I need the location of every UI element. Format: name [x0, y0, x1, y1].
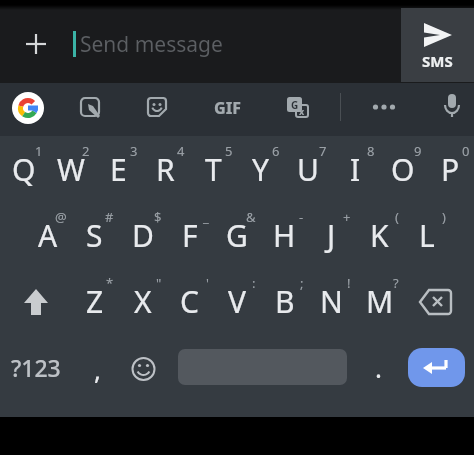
staticText: *: [106, 274, 114, 292]
button[interactable]: U: [284, 136, 331, 202]
button[interactable]: C: [166, 268, 213, 334]
button[interactable]: [12, 92, 44, 124]
staticText: D: [132, 215, 154, 256]
staticText: S: [86, 215, 103, 256]
button[interactable]: L: [403, 202, 450, 268]
staticText: -: [299, 208, 304, 226]
staticText: .: [375, 350, 382, 385]
staticText: ': [206, 274, 209, 292]
button[interactable]: Y: [237, 136, 284, 202]
staticText: Q: [12, 149, 36, 190]
button[interactable]: S: [71, 202, 118, 268]
staticText: x: [299, 105, 305, 117]
button[interactable]: E: [95, 136, 142, 202]
staticText: GIF: [214, 97, 242, 119]
staticText: 9: [414, 142, 422, 160]
button[interactable]: GIF: [206, 92, 250, 124]
staticText: ;: [300, 274, 304, 292]
staticText: +: [343, 208, 351, 226]
staticText: U: [297, 149, 319, 190]
staticText: H: [273, 215, 296, 256]
button[interactable]: G: [284, 94, 312, 122]
staticText: 8: [367, 142, 375, 160]
staticText: L: [419, 215, 435, 256]
button[interactable]: B: [261, 268, 308, 334]
staticText: E: [110, 149, 127, 190]
button[interactable]: N: [308, 268, 355, 334]
staticText: 4: [177, 142, 185, 160]
staticText: G: [291, 98, 299, 112]
button[interactable]: .: [355, 334, 402, 400]
button[interactable]: Q: [0, 136, 47, 202]
staticText: 7: [319, 142, 327, 160]
staticText: @: [55, 208, 67, 226]
staticText: 3: [130, 142, 138, 160]
staticText: &: [246, 208, 256, 226]
button[interactable]: G: [213, 202, 260, 268]
staticText: (: [395, 208, 399, 226]
staticText: Send message: [80, 30, 223, 59]
button[interactable]: M: [356, 268, 403, 334]
button[interactable]: A: [24, 202, 71, 268]
staticText: ?123: [11, 352, 61, 383]
staticText: I: [350, 149, 361, 190]
button[interactable]: ,: [71, 334, 123, 400]
staticText: !: [347, 274, 351, 292]
button[interactable]: F: [166, 202, 213, 268]
staticText: P: [441, 149, 460, 190]
button[interactable]: SMS: [401, 8, 474, 82]
staticText: A: [38, 215, 58, 256]
staticText: ?: [393, 274, 399, 292]
staticText: 0: [462, 142, 470, 160]
staticText: G: [226, 215, 248, 256]
staticText: W: [57, 149, 85, 190]
button[interactable]: [368, 94, 400, 122]
staticText: F: [182, 215, 198, 256]
button[interactable]: [123, 334, 165, 400]
button[interactable]: Z: [71, 268, 118, 334]
staticText: ,: [94, 352, 101, 387]
staticText: B: [275, 281, 295, 322]
button[interactable]: P: [427, 136, 474, 202]
button[interactable]: X: [119, 268, 166, 334]
button[interactable]: [438, 91, 466, 123]
staticText: T: [205, 149, 222, 190]
staticText: Y: [252, 149, 269, 190]
staticText: N: [320, 281, 343, 322]
staticText: C: [180, 281, 199, 322]
button[interactable]: V: [213, 268, 260, 334]
button[interactable]: ?123: [0, 334, 71, 400]
staticText: _: [203, 208, 209, 226]
button[interactable]: [408, 348, 465, 387]
button[interactable]: R: [142, 136, 189, 202]
button[interactable]: [403, 268, 474, 334]
staticText: V: [228, 281, 246, 322]
staticText: ": [156, 274, 162, 292]
staticText: ): [442, 208, 446, 226]
button[interactable]: H: [261, 202, 308, 268]
button[interactable]: K: [356, 202, 403, 268]
staticText: :: [252, 274, 256, 292]
staticText: SMS: [422, 51, 453, 71]
staticText: 5: [225, 142, 233, 160]
button[interactable]: O: [379, 136, 426, 202]
button[interactable]: [0, 268, 71, 334]
staticText: $: [154, 208, 162, 226]
button[interactable]: I: [332, 136, 379, 202]
staticText: Z: [86, 281, 104, 322]
staticText: #: [105, 208, 114, 226]
staticText: R: [156, 149, 175, 190]
button[interactable]: J: [308, 202, 355, 268]
button[interactable]: [20, 28, 52, 60]
button[interactable]: W: [47, 136, 94, 202]
staticText: O: [391, 149, 415, 190]
button[interactable]: T: [190, 136, 237, 202]
staticText: K: [370, 215, 389, 256]
staticText: 2: [82, 142, 90, 160]
button[interactable]: D: [119, 202, 166, 268]
staticText: 6: [272, 142, 280, 160]
button[interactable]: [78, 95, 104, 121]
button[interactable]: [145, 95, 171, 121]
staticText: J: [327, 215, 336, 256]
